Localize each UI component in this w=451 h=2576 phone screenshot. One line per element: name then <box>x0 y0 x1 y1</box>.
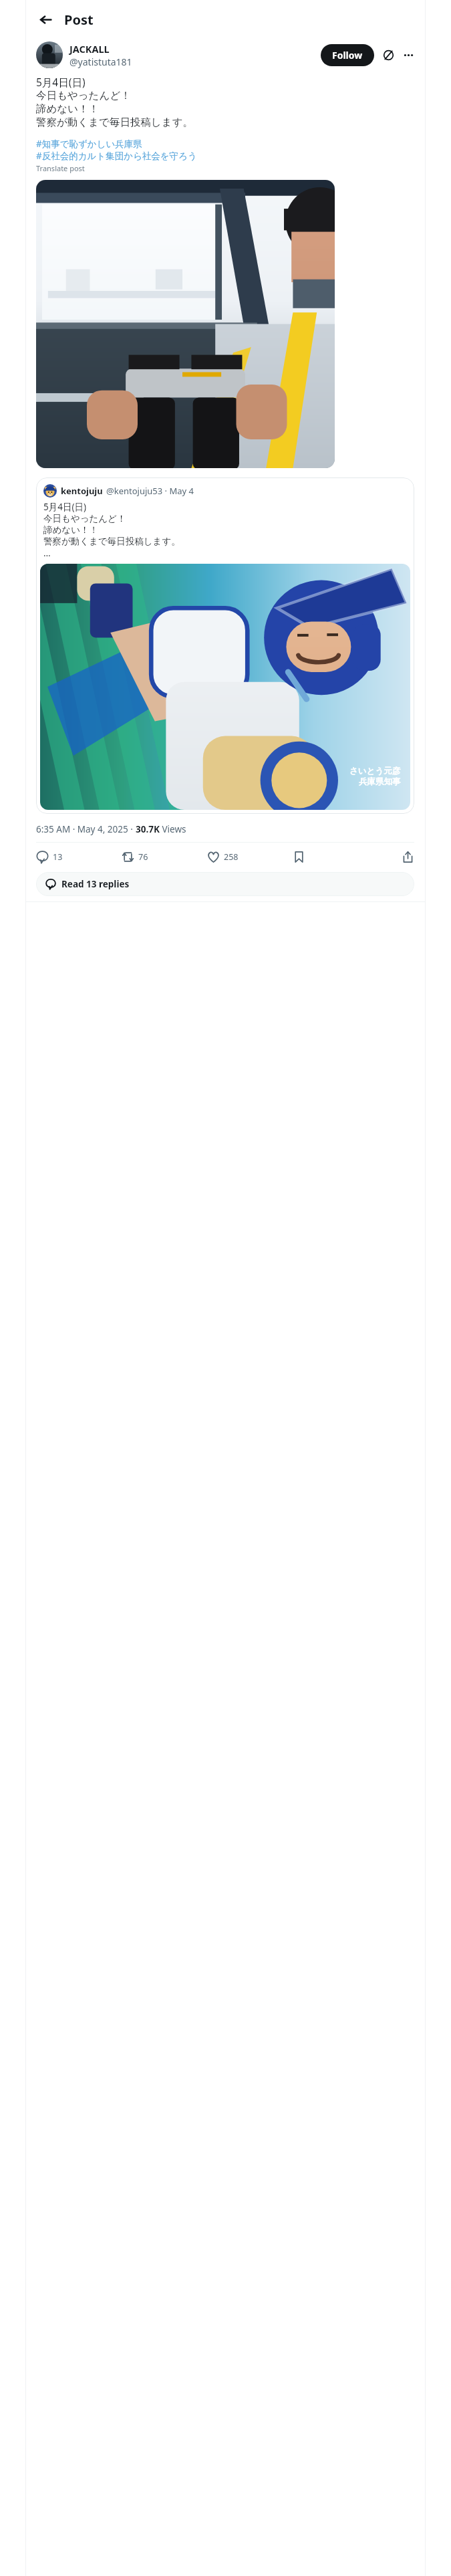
button[interactable]: kentojuju <box>36 477 414 814</box>
staticText: 6:35 AM · May 4, 2025 · <box>36 823 136 835</box>
staticText: 警察が動くまで毎日投稿します。 <box>36 116 194 129</box>
button[interactable]: #知事で恥ずかしい兵庫県 <box>36 138 197 162</box>
staticText: … <box>43 547 51 559</box>
staticText: @yatistuta181 <box>69 56 132 68</box>
staticText: 今日もやったんど！ <box>36 89 131 102</box>
staticText: 兵庫県知事 <box>359 776 401 787</box>
staticText: Follow <box>332 49 363 62</box>
staticText: 5月4日(日) <box>36 75 86 89</box>
button[interactable]: Profile photo <box>36 41 63 68</box>
button[interactable]: Repost <box>122 845 207 869</box>
button[interactable]: Translate post <box>36 163 85 173</box>
button[interactable]: Reply <box>36 845 122 869</box>
staticText: 諦めない！！ <box>43 524 98 536</box>
button[interactable]: Follow <box>321 44 374 66</box>
staticText: Views <box>160 823 186 835</box>
button[interactable]: Back <box>31 5 60 34</box>
button[interactable]: Bookmark <box>293 845 366 869</box>
button[interactable]: Post image <box>36 180 335 468</box>
staticText: Post <box>64 11 94 29</box>
staticText: 13 <box>53 851 63 863</box>
staticText: JACKALL <box>69 42 110 56</box>
staticText: Read 13 replies <box>61 878 130 890</box>
staticText: 諦めない！！ <box>36 102 100 116</box>
staticText: 今日もやったんど！ <box>43 513 126 524</box>
staticText: kentojuju <box>61 485 103 497</box>
staticText: 5月4日(日) <box>43 501 87 513</box>
staticText: さいとう元彦 <box>349 766 401 776</box>
button[interactable]: Read 13 replies <box>36 872 414 896</box>
staticText: @kentojuju53 · May 4 <box>106 485 194 497</box>
staticText: 30.7K <box>136 823 160 835</box>
button[interactable]: Like <box>207 845 293 869</box>
staticText: #知事で恥ずかしい兵庫県 <box>36 138 142 150</box>
button[interactable]: JACKALL <box>69 42 321 68</box>
staticText: 76 <box>138 851 148 863</box>
button[interactable]: Share <box>366 843 414 871</box>
staticText: Translate post <box>36 163 85 173</box>
staticText: 258 <box>224 851 239 863</box>
staticText: 警察が動くまで毎日投稿します。 <box>43 536 180 547</box>
button[interactable]: Not interested in ads <box>378 45 398 65</box>
button[interactable]: More <box>398 45 418 65</box>
staticText: #反社会的カルト集団から社会を守ろう <box>36 150 197 162</box>
